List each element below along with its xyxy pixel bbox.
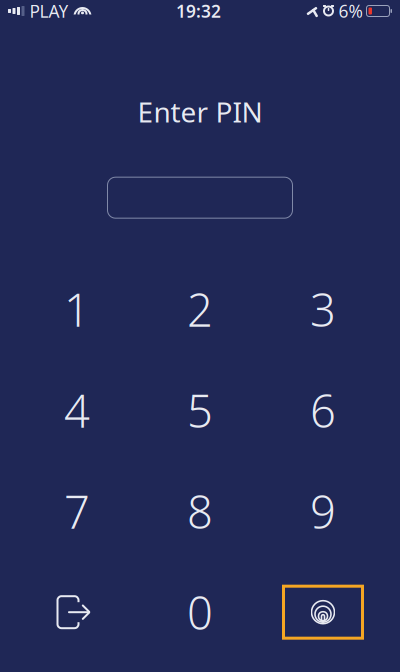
button[interactable]: Exit [27,569,127,655]
staticText: 4 [64,380,90,440]
button[interactable]: 1 [27,266,127,352]
staticText: Enter PIN [137,93,262,130]
staticText: 3 [310,279,336,339]
staticText: 5 [187,380,213,440]
staticText: 1 [64,279,90,339]
staticText: 2 [187,279,213,339]
staticText: 9 [310,481,336,541]
button[interactable]: 7 [27,468,127,554]
button[interactable]: Unlock with fingerprint [273,569,373,655]
staticText: 19:32 [176,0,221,22]
button[interactable]: 9 [273,468,373,554]
button[interactable]: 5 [150,367,250,453]
button[interactable]: 3 [273,266,373,352]
button[interactable]: 4 [27,367,127,453]
staticText: PLAY [29,0,68,22]
button[interactable]: 2 [150,266,250,352]
staticText: 6 [310,380,336,440]
button[interactable]: 0 [150,569,250,655]
staticText: 8 [187,481,213,541]
button[interactable]: 8 [150,468,250,554]
button[interactable]: 6 [273,367,373,453]
staticText: 6% [338,0,362,22]
staticText: 0 [187,582,213,642]
staticText: 7 [64,481,90,541]
